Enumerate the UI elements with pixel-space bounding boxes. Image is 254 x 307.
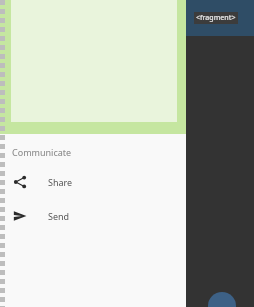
button[interactable]: Add <box>208 292 236 307</box>
staticText: Send <box>48 210 70 222</box>
button[interactable]: Share <box>4 171 186 193</box>
staticText: Communicate <box>12 146 72 158</box>
staticText: Share <box>48 176 73 188</box>
other: Send <box>13 209 27 223</box>
staticText: <fragment> <box>196 13 236 23</box>
button[interactable]: Send <box>4 205 186 227</box>
other: Share <box>13 175 27 189</box>
